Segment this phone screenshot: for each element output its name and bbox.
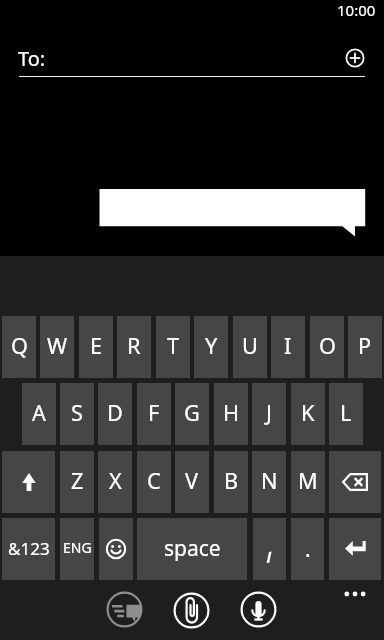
- staticText: B: [224, 466, 239, 496]
- staticText: A: [32, 398, 46, 428]
- staticText: 10:00: [337, 0, 376, 20]
- button[interactable]: U: [233, 316, 267, 378]
- staticText: X: [109, 466, 122, 496]
- button[interactable]: Send: [104, 589, 145, 630]
- staticText: S: [71, 398, 83, 428]
- staticText: space: [164, 534, 221, 563]
- button[interactable]: Attach: [171, 590, 212, 631]
- staticText: V: [185, 466, 199, 496]
- staticText: H: [223, 398, 240, 428]
- button[interactable]: Backspace: [329, 451, 381, 513]
- button[interactable]: C: [137, 451, 171, 513]
- staticText: K: [301, 398, 315, 428]
- staticText: .: [305, 535, 311, 564]
- button[interactable]: Comma: [253, 518, 286, 580]
- button[interactable]: W: [40, 316, 74, 378]
- button[interactable]: Add recipient: [341, 44, 369, 72]
- staticText: Q: [11, 331, 28, 361]
- button[interactable]: G: [175, 383, 209, 445]
- staticText: ENG: [63, 538, 92, 557]
- staticText: O: [319, 331, 336, 361]
- button[interactable]: space: [137, 518, 247, 580]
- button[interactable]: T: [156, 316, 190, 378]
- button[interactable]: J: [252, 383, 286, 445]
- button[interactable]: ENG: [60, 518, 94, 580]
- button[interactable]: P: [348, 316, 382, 378]
- button[interactable]: N: [252, 451, 286, 513]
- button[interactable]: Z: [60, 451, 94, 513]
- staticText: M: [298, 466, 318, 496]
- staticText: R: [127, 331, 141, 361]
- staticText: J: [266, 398, 272, 428]
- button[interactable]: D: [98, 383, 132, 445]
- button[interactable]: Shift: [2, 451, 55, 513]
- staticText: U: [242, 331, 258, 361]
- button[interactable]: H: [214, 383, 248, 445]
- button[interactable]: F: [137, 383, 171, 445]
- button[interactable]: Enter: [329, 518, 381, 580]
- button[interactable]: E: [79, 316, 113, 378]
- button[interactable]: Q: [2, 316, 36, 378]
- staticText: I: [284, 331, 292, 361]
- button[interactable]: I: [271, 316, 305, 378]
- button[interactable]: To:: [0, 41, 340, 77]
- button[interactable]: O: [310, 316, 344, 378]
- button[interactable]: B: [214, 451, 248, 513]
- button[interactable]: R: [117, 316, 151, 378]
- staticText: D: [107, 398, 123, 428]
- staticText: To:: [18, 45, 46, 72]
- button[interactable]: More options: [336, 583, 374, 605]
- staticText: F: [148, 398, 160, 428]
- button[interactable]: Y: [194, 316, 228, 378]
- button[interactable]: .: [291, 518, 324, 580]
- staticText: Z: [71, 466, 84, 496]
- button[interactable]: A: [22, 383, 56, 445]
- button[interactable]: X: [98, 451, 132, 513]
- staticText: &123: [8, 537, 50, 560]
- staticText: P: [358, 331, 372, 361]
- staticText: T: [167, 331, 180, 361]
- staticText: Y: [205, 331, 218, 361]
- staticText: L: [340, 398, 352, 428]
- button[interactable]: L: [329, 383, 363, 445]
- button[interactable]: K: [291, 383, 325, 445]
- button[interactable]: Voice input: [238, 589, 279, 630]
- button[interactable]: M: [291, 451, 325, 513]
- staticText: C: [147, 466, 161, 496]
- button[interactable]: V: [175, 451, 209, 513]
- staticText: N: [261, 466, 278, 496]
- button[interactable]: &123: [2, 518, 55, 580]
- staticText: E: [90, 331, 103, 361]
- button[interactable]: S: [60, 383, 94, 445]
- staticText: G: [184, 398, 200, 428]
- button[interactable]: Emoji: [99, 518, 133, 580]
- staticText: W: [47, 331, 68, 361]
